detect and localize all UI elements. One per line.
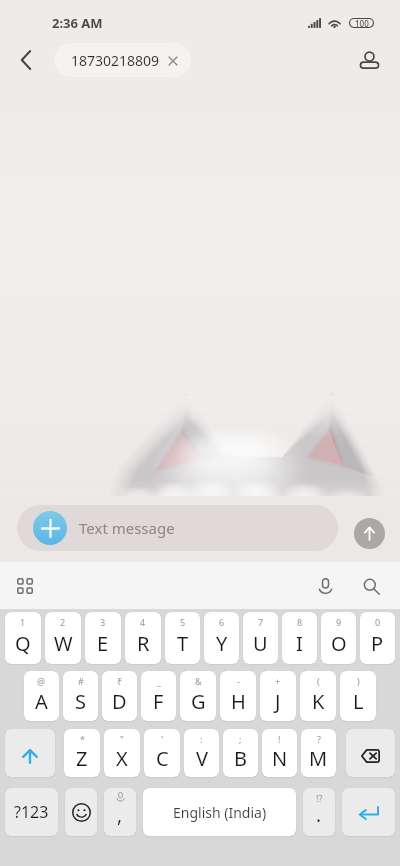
staticText: Q: [15, 630, 31, 657]
button[interactable]: 7: [243, 612, 278, 664]
staticText: 4: [140, 616, 146, 628]
staticText: Z: [76, 745, 88, 772]
staticText: D: [112, 688, 127, 715]
staticText: E: [97, 630, 109, 657]
staticText: @: [37, 675, 46, 687]
staticText: T: [177, 630, 189, 657]
staticText: G: [191, 688, 206, 715]
staticText: #: [78, 675, 84, 687]
staticText: R: [137, 630, 150, 657]
staticText: L: [353, 688, 364, 715]
staticText: ?123: [14, 801, 49, 823]
staticText: O: [331, 630, 347, 657]
staticText: Y: [216, 630, 228, 657]
button[interactable]: 6: [204, 612, 239, 664]
staticText: -: [237, 675, 240, 687]
staticText: (: [317, 675, 320, 687]
button[interactable]: Emoji: [65, 788, 97, 836]
button[interactable]: Enter: [342, 788, 395, 836]
button[interactable]: ): [340, 671, 376, 721]
button[interactable]: ₹: [102, 671, 137, 721]
button[interactable]: Voice input: [308, 569, 342, 603]
staticText: 2: [60, 616, 66, 628]
staticText: +: [275, 675, 281, 687]
staticText: N: [272, 745, 288, 772]
staticText: W: [54, 630, 73, 657]
button[interactable]: ,: [104, 788, 136, 836]
button[interactable]: !: [262, 729, 297, 777]
staticText: U: [253, 630, 268, 657]
staticText: K: [312, 688, 325, 715]
button[interactable]: 18730218809: [54, 43, 191, 77]
button[interactable]: 9: [321, 612, 356, 664]
button[interactable]: ": [104, 729, 140, 777]
staticText: M: [309, 745, 328, 772]
staticText: 18730218809: [71, 51, 160, 70]
button[interactable]: 8: [282, 612, 317, 664]
staticText: ": [120, 733, 124, 745]
button[interactable]: Clear: [164, 52, 181, 69]
staticText: &: [195, 675, 202, 687]
staticText: X: [116, 745, 128, 772]
staticText: 1: [20, 616, 26, 628]
button[interactable]: 0: [360, 612, 395, 664]
staticText: ,: [117, 802, 123, 828]
button[interactable]: English (India): [143, 788, 296, 836]
button[interactable]: 1: [5, 612, 41, 664]
staticText: 9: [336, 616, 342, 628]
button[interactable]: 3: [85, 612, 121, 664]
button[interactable]: ': [144, 729, 180, 777]
staticText: A: [35, 688, 48, 715]
button[interactable]: 4: [125, 612, 161, 664]
button[interactable]: !?: [303, 788, 335, 836]
button[interactable]: Search: [354, 569, 388, 603]
staticText: ;: [239, 733, 242, 745]
button[interactable]: 2: [45, 612, 81, 664]
staticText: 100: [355, 18, 369, 28]
button[interactable]: _: [141, 671, 176, 721]
staticText: P: [371, 630, 384, 657]
staticText: V: [196, 745, 208, 772]
staticText: .: [316, 802, 322, 828]
staticText: 8: [297, 616, 303, 628]
staticText: 7: [258, 616, 264, 628]
button[interactable]: Contact details: [349, 40, 389, 80]
button[interactable]: Keyboard apps: [8, 569, 42, 603]
button[interactable]: &: [180, 671, 216, 721]
button[interactable]: Add attachment: [17, 505, 338, 551]
staticText: Text message: [79, 518, 175, 538]
button[interactable]: Back: [6, 40, 46, 80]
staticText: *: [80, 733, 85, 745]
staticText: F: [153, 688, 164, 715]
button[interactable]: Add attachment: [33, 511, 67, 545]
staticText: ?: [317, 733, 321, 745]
button[interactable]: (: [300, 671, 336, 721]
button[interactable]: Send: [354, 518, 385, 549]
button[interactable]: #: [63, 671, 98, 721]
staticText: C: [156, 745, 169, 772]
staticText: 3: [100, 616, 106, 628]
button[interactable]: ;: [223, 729, 258, 777]
button[interactable]: ?: [301, 729, 336, 777]
staticText: 6: [219, 616, 225, 628]
button[interactable]: @: [24, 671, 59, 721]
button[interactable]: *: [64, 729, 100, 777]
button[interactable]: -: [220, 671, 256, 721]
button[interactable]: ?123: [5, 788, 58, 836]
staticText: 5: [180, 616, 186, 628]
staticText: B: [234, 745, 247, 772]
staticText: ₹: [117, 675, 123, 687]
staticText: English (India): [173, 803, 267, 822]
staticText: 2:36 AM: [52, 14, 103, 32]
button[interactable]: +: [260, 671, 296, 721]
button[interactable]: Backspace: [346, 729, 395, 777]
button[interactable]: :: [184, 729, 219, 777]
button[interactable]: Shift: [5, 729, 55, 777]
staticText: _: [157, 675, 161, 687]
staticText: S: [75, 688, 86, 715]
staticText: ': [161, 733, 164, 745]
staticText: H: [231, 688, 246, 715]
button[interactable]: 5: [165, 612, 200, 664]
staticText: I: [296, 630, 303, 657]
staticText: J: [275, 688, 281, 715]
